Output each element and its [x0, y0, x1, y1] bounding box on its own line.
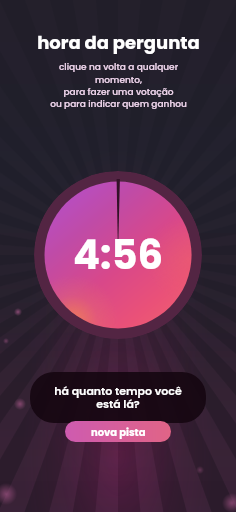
- staticText: 4:56: [73, 227, 163, 283]
- button[interactable]: 4:56: [34, 171, 202, 339]
- button[interactable]: há quanto tempo você está lá?: [30, 372, 206, 423]
- staticText: hora da pergunta: [37, 30, 200, 55]
- staticText: há quanto tempo você está lá?: [54, 383, 182, 412]
- button[interactable]: nova pista: [65, 421, 171, 442]
- staticText: clique na volta a qualquer momento, para…: [50, 61, 187, 110]
- staticText: nova pista: [91, 425, 146, 439]
